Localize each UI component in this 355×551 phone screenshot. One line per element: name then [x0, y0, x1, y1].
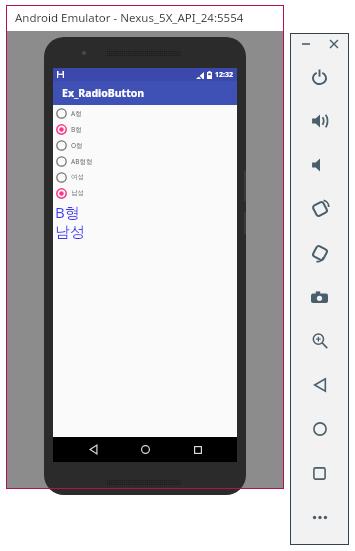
- button[interactable]: A형: [53, 105, 237, 121]
- button[interactable]: Home: [132, 437, 158, 462]
- staticText: A형: [71, 109, 82, 118]
- button[interactable]: Zoom: [290, 319, 349, 363]
- staticText: 여성: [71, 173, 84, 181]
- button[interactable]: Power: [290, 55, 349, 99]
- staticText: 남성: [71, 189, 84, 197]
- button[interactable]: AB형형: [53, 153, 237, 169]
- button[interactable]: Rotate right: [290, 231, 349, 275]
- button[interactable]: Minimize: [297, 35, 315, 53]
- button[interactable]: Recent apps: [185, 437, 211, 462]
- button[interactable]: Rotate left: [290, 187, 349, 231]
- button[interactable]: O형: [53, 137, 237, 153]
- button[interactable]: Volume down: [290, 143, 349, 187]
- staticText: B형: [55, 202, 80, 222]
- button[interactable]: Back: [80, 437, 106, 462]
- button[interactable]: More: [290, 495, 349, 539]
- staticText: O형: [71, 141, 83, 150]
- button[interactable]: Volume up: [290, 99, 349, 143]
- button[interactable]: Take screenshot: [290, 275, 349, 319]
- staticText: 12:32: [215, 70, 233, 80]
- staticText: AB형형: [71, 157, 93, 166]
- button[interactable]: 여성: [53, 169, 237, 185]
- staticText: B형: [71, 125, 82, 134]
- button[interactable]: Back: [290, 363, 349, 407]
- staticText: Ex_RadioButton: [62, 86, 145, 100]
- button[interactable]: Close: [325, 35, 343, 53]
- button[interactable]: Overview: [290, 451, 349, 495]
- staticText: Android Emulator - Nexus_5X_API_24:5554: [15, 10, 244, 26]
- button[interactable]: Home: [290, 407, 349, 451]
- button[interactable]: 남성: [53, 185, 237, 201]
- button[interactable]: B형: [53, 121, 237, 137]
- staticText: 남성: [55, 223, 85, 242]
